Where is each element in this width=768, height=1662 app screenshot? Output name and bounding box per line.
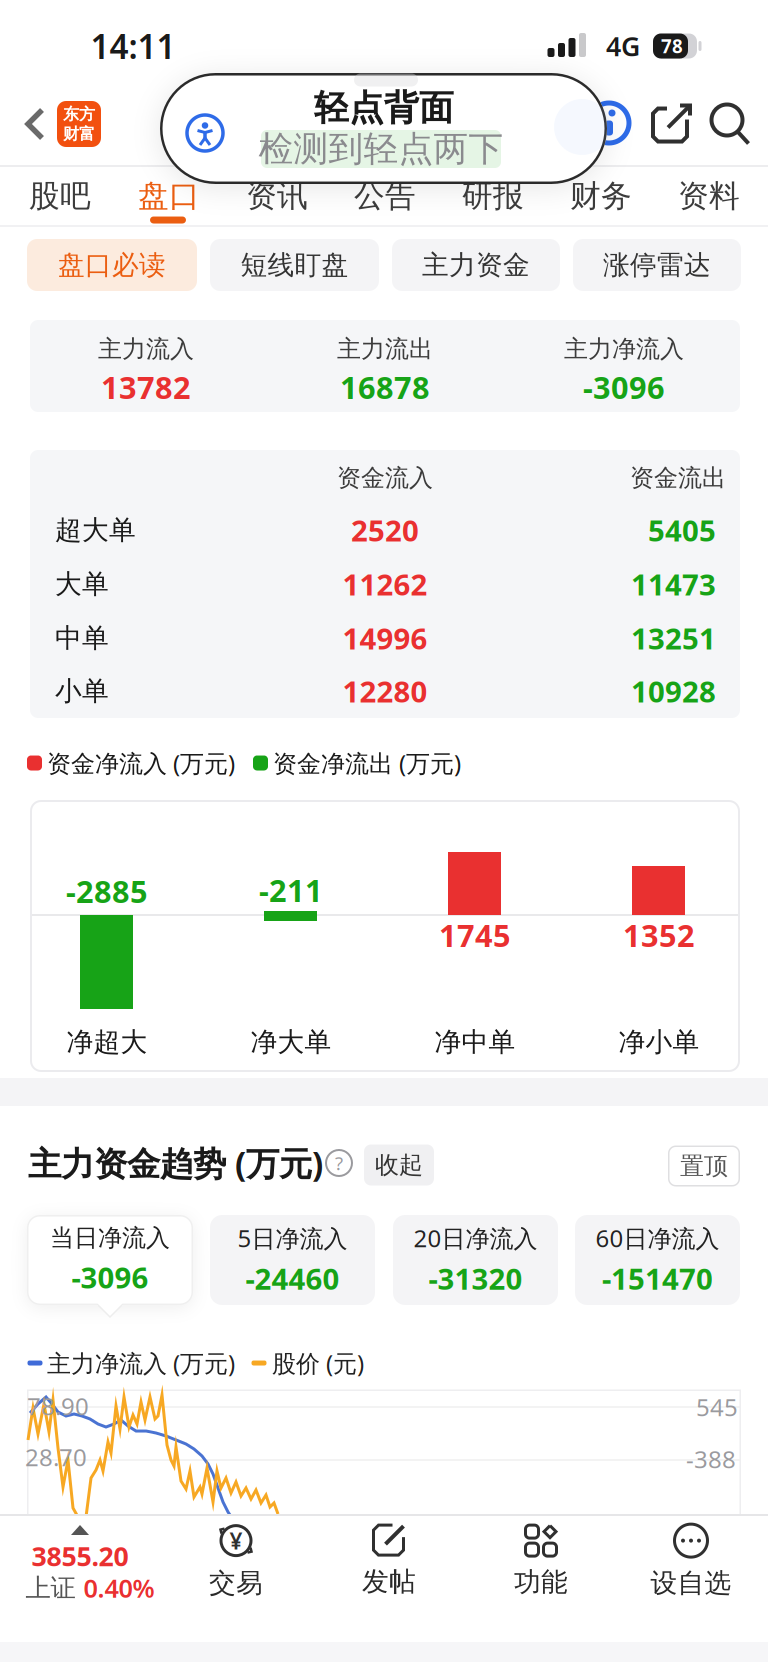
button[interactable]: 20日净流入 <box>393 1215 558 1305</box>
staticText: 功能 <box>514 1566 568 1598</box>
staticText: 11262 <box>342 564 427 603</box>
button[interactable]: 东方财富 <box>57 101 101 147</box>
staticText: -3096 <box>583 367 665 407</box>
staticText: 检测到轻点两下 <box>258 128 503 170</box>
staticText: 主力流出 <box>337 334 433 364</box>
staticText: 主力资金 <box>422 249 530 281</box>
staticText: 轻点背面 <box>314 87 454 129</box>
button[interactable]: 置顶 <box>668 1145 740 1186</box>
button[interactable]: 60日净流入 <box>575 1215 740 1305</box>
button[interactable]: 当日净流入 <box>27 1215 193 1305</box>
button[interactable]: Back <box>27 108 45 140</box>
staticText: 0.40% <box>83 1571 154 1605</box>
staticText: 资讯 <box>246 177 308 215</box>
button[interactable]: 研报 <box>462 177 524 215</box>
staticText: 中单 <box>55 622 109 654</box>
button[interactable]: 发帖 <box>362 1524 416 1598</box>
staticText: 短线盯盘 <box>240 249 348 281</box>
staticText: 1745 <box>439 915 511 955</box>
button[interactable]: 资料 <box>678 177 740 215</box>
staticText: 盘口必读 <box>58 249 166 281</box>
button[interactable]: Share <box>651 103 693 143</box>
staticText: 收起 <box>375 1150 423 1180</box>
button[interactable]: 股吧 <box>29 177 91 215</box>
button[interactable]: 主力资金 <box>392 239 560 291</box>
staticText: 主力净流入 <box>564 334 684 364</box>
staticText: 设自选 <box>650 1567 731 1599</box>
button[interactable]: 帮助 <box>326 1150 352 1176</box>
staticText: -2885 <box>66 871 148 911</box>
staticText: 发帖 <box>362 1565 416 1598</box>
staticText: ? <box>335 1151 343 1175</box>
button[interactable]: 公告 <box>354 177 416 215</box>
staticText: 交易 <box>209 1567 263 1599</box>
staticText: 14:11 <box>90 24 175 68</box>
staticText: 5日净流入 <box>237 1222 347 1254</box>
button[interactable]: 设自选 <box>650 1523 731 1599</box>
staticText: 净大单 <box>250 1026 331 1058</box>
staticText: 小单 <box>55 675 109 707</box>
staticText: 12280 <box>342 671 427 710</box>
staticText: 资料 <box>678 177 740 215</box>
staticText: 28.70 <box>25 1441 87 1473</box>
staticText: 2520 <box>351 510 419 549</box>
staticText: 净小单 <box>618 1026 699 1058</box>
button[interactable]: 资讯 <box>586 100 632 146</box>
staticText: 净中单 <box>434 1026 515 1058</box>
staticText: -31320 <box>428 1259 522 1298</box>
button[interactable]: 收起 <box>364 1144 434 1185</box>
staticText: 置顶 <box>680 1151 728 1181</box>
staticText: 股吧 <box>29 177 91 215</box>
staticText: 盘口 <box>138 177 200 215</box>
staticText: 上证 <box>25 1572 75 1603</box>
button[interactable]: 盘口必读 <box>27 239 197 291</box>
staticText: -151470 <box>602 1259 713 1298</box>
button[interactable]: 盘口 <box>138 177 200 215</box>
button[interactable]: 5日净流入 <box>210 1215 375 1305</box>
button[interactable]: Search <box>709 102 750 145</box>
staticText: 16878 <box>340 367 430 407</box>
staticText: -3096 <box>71 1258 148 1297</box>
staticText: 大单 <box>55 568 109 600</box>
staticText: 78.90 <box>27 1390 89 1422</box>
staticText: 14996 <box>342 618 427 657</box>
staticText: 资金流入 <box>337 463 433 493</box>
staticText: 13782 <box>101 367 191 407</box>
staticText: 545 <box>696 1391 738 1423</box>
staticText: 3855.20 <box>31 1538 128 1574</box>
staticText: 当日净流入 <box>50 1223 170 1253</box>
button[interactable]: 资讯 <box>246 177 308 215</box>
staticText: 研报 <box>462 177 524 215</box>
staticText: 公告 <box>354 177 416 215</box>
staticText: 东方 <box>63 104 95 124</box>
staticText: 20日净流入 <box>413 1222 537 1254</box>
staticText: 净超大 <box>66 1026 147 1058</box>
button[interactable]: 短线盯盘 <box>210 239 379 291</box>
staticText: 财富 <box>63 124 95 144</box>
staticText: 60日净流入 <box>595 1222 719 1254</box>
staticText: 11473 <box>631 564 716 603</box>
staticText: 涨停雷达 <box>603 249 711 281</box>
staticText: 主力资金趋势 (万元) <box>28 1141 323 1185</box>
staticText: 主力净流入 (万元) <box>47 1347 235 1379</box>
staticText: ¥ <box>229 1526 242 1556</box>
staticText: 13251 <box>631 618 716 657</box>
staticText: 4G <box>606 28 640 64</box>
button[interactable]: ¥ <box>209 1523 263 1599</box>
button[interactable]: 上证指数 <box>24 1521 156 1609</box>
staticText: 超大单 <box>55 514 136 546</box>
staticText: 5405 <box>648 510 716 549</box>
button[interactable]: 涨停雷达 <box>573 239 741 291</box>
staticText: 资金净流出 (万元) <box>273 747 461 779</box>
staticText: 财务 <box>570 177 632 215</box>
staticText: 主力流入 <box>98 334 194 364</box>
staticText: -388 <box>686 1443 736 1475</box>
staticText: -211 <box>259 870 323 910</box>
staticText: 资金流出 <box>630 463 726 493</box>
button[interactable]: 功能 <box>514 1524 568 1598</box>
button[interactable]: 财务 <box>570 177 632 215</box>
staticText: 资金净流入 (万元) <box>47 747 235 779</box>
staticText: 78 <box>661 34 683 58</box>
staticText: 10928 <box>631 671 716 710</box>
staticText: 1352 <box>623 915 695 955</box>
